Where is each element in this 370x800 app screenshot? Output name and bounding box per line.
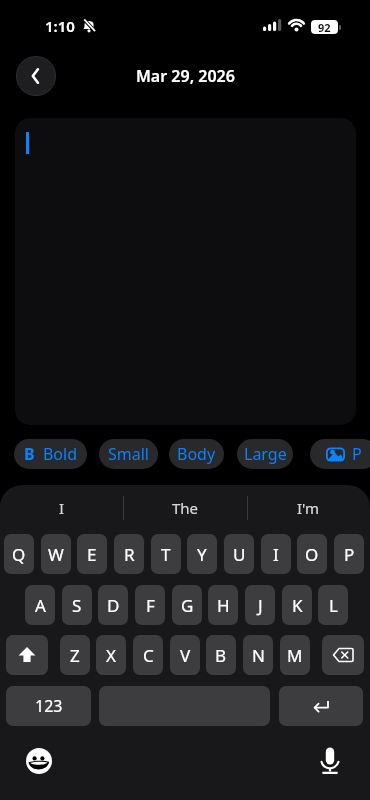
staticText: Large (244, 443, 287, 465)
staticText: 1:10 (45, 16, 75, 36)
staticText: W (48, 543, 64, 566)
button[interactable]: I'm (247, 496, 370, 520)
staticText: Small (108, 443, 149, 465)
staticText: V (180, 644, 191, 667)
button[interactable]: U (224, 534, 254, 574)
staticText: Q (12, 543, 26, 566)
button[interactable]: P (310, 439, 370, 469)
button[interactable]: P (334, 534, 364, 574)
staticText: D (107, 594, 120, 617)
button[interactable]: I (261, 534, 291, 574)
staticText: C (143, 644, 154, 667)
button[interactable]: H (208, 585, 238, 625)
button[interactable]: B (206, 635, 236, 675)
staticText: Body (177, 443, 216, 465)
button[interactable]: Y (187, 534, 217, 574)
staticText: A (35, 594, 46, 617)
button[interactable]: J (245, 585, 275, 625)
button[interactable]: Z (60, 635, 90, 675)
staticText: O (305, 543, 319, 566)
staticText: P (344, 543, 355, 566)
staticText: 92 (318, 20, 331, 34)
button[interactable]: X (96, 635, 126, 675)
staticText: P (352, 443, 362, 465)
button[interactable] (322, 635, 364, 675)
button[interactable]: K (282, 585, 312, 625)
button[interactable]: A (25, 585, 55, 625)
button[interactable]: Body (169, 439, 224, 469)
staticText: S (72, 594, 82, 617)
staticText: U (233, 543, 246, 566)
button[interactable]: I (0, 496, 123, 520)
staticText: X (106, 644, 116, 667)
staticText: I'm (297, 498, 320, 518)
button[interactable]: D (98, 585, 128, 625)
button[interactable]: T (151, 534, 181, 574)
staticText: Y (197, 543, 207, 566)
staticText: N (252, 644, 265, 667)
button[interactable] (6, 635, 48, 675)
button[interactable]: W (41, 534, 71, 574)
button[interactable]: Q (4, 534, 34, 574)
staticText: H (217, 594, 230, 617)
staticText: I (273, 543, 279, 566)
button[interactable]: G (172, 585, 202, 625)
button[interactable]: C (133, 635, 163, 675)
staticText: R (124, 543, 135, 566)
staticText: M (287, 644, 303, 667)
button[interactable] (16, 56, 56, 96)
button[interactable]: Large (237, 439, 293, 469)
staticText: I (59, 498, 65, 518)
staticText: B Bold (24, 443, 78, 465)
button[interactable]: L (318, 585, 348, 625)
staticText: 123 (35, 695, 63, 717)
button[interactable]: 123 (6, 686, 91, 726)
button[interactable]: V (170, 635, 200, 675)
staticText: G (181, 594, 194, 617)
staticText: F (146, 594, 155, 617)
staticText: E (87, 543, 97, 566)
staticText: L (329, 594, 338, 617)
staticText: K (292, 594, 303, 617)
staticText: T (161, 543, 171, 566)
button[interactable]: B Bold (14, 439, 87, 469)
button[interactable]: S (62, 585, 92, 625)
button[interactable]: R (114, 534, 144, 574)
staticText: B (215, 644, 227, 667)
button[interactable]: F (135, 585, 165, 625)
button[interactable] (315, 746, 345, 776)
button[interactable]: M (280, 635, 310, 675)
button[interactable]: Small (99, 439, 158, 469)
staticText: The (172, 498, 199, 518)
button[interactable] (15, 118, 356, 425)
staticText: Mar 29, 2026 (136, 65, 235, 87)
staticText: Z (70, 644, 80, 667)
button[interactable]: E (77, 534, 107, 574)
button[interactable] (24, 746, 54, 776)
button[interactable]: N (243, 635, 273, 675)
button[interactable]: The (124, 496, 247, 520)
button[interactable] (279, 686, 363, 726)
button[interactable]: O (297, 534, 327, 574)
staticText: J (258, 594, 263, 617)
